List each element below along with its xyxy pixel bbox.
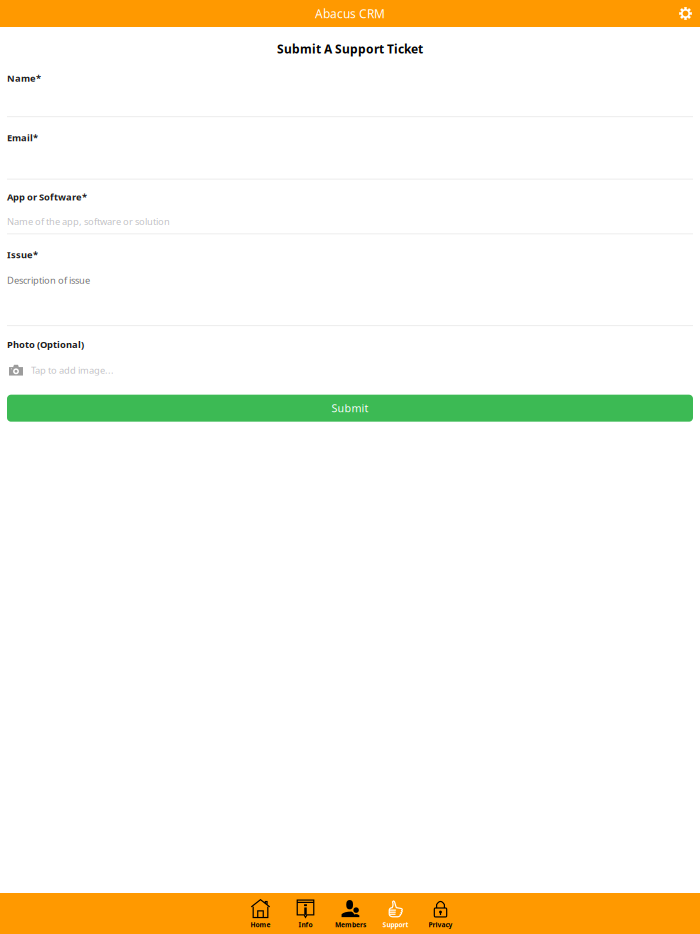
staticText: Members bbox=[335, 920, 366, 929]
staticText: Issue* bbox=[7, 248, 38, 261]
staticText: Submit bbox=[331, 401, 368, 415]
staticText: Abacus CRM bbox=[315, 5, 385, 21]
button[interactable]: Settings bbox=[671, 0, 700, 27]
staticText: Privacy bbox=[428, 920, 452, 929]
staticText: Submit A Support Ticket bbox=[277, 41, 423, 57]
button[interactable]: Home bbox=[238, 893, 283, 934]
button[interactable]: Privacy bbox=[418, 893, 463, 934]
staticText: Name* bbox=[7, 72, 41, 84]
button[interactable]: Info bbox=[283, 893, 328, 934]
staticText: Photo (Optional) bbox=[7, 338, 84, 351]
staticText: Email* bbox=[7, 131, 38, 144]
staticText: Info bbox=[298, 920, 312, 929]
button[interactable]: Tap to add image... bbox=[7, 365, 693, 376]
staticText: Home bbox=[250, 920, 270, 929]
button[interactable]: Support bbox=[373, 893, 418, 934]
staticText: Tap to add image... bbox=[31, 364, 114, 376]
staticText: Description of issue bbox=[7, 274, 90, 286]
staticText: Name of the app, software or solution bbox=[7, 215, 170, 227]
staticText: Support bbox=[382, 920, 408, 929]
button[interactable]: Submit bbox=[7, 395, 693, 422]
staticText: App or Software* bbox=[7, 191, 87, 203]
button[interactable]: Members bbox=[328, 893, 373, 934]
